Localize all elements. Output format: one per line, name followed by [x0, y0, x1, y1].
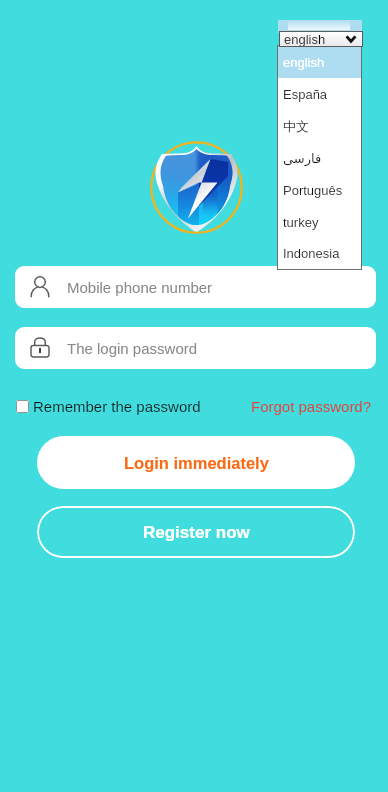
staticText: english	[284, 32, 326, 46]
button[interactable]: turkey	[278, 206, 361, 238]
button[interactable]: Indonesia	[278, 238, 361, 269]
button[interactable]: Português	[278, 174, 361, 206]
staticText: Indonesia	[283, 246, 340, 261]
button[interactable]: Register now	[37, 506, 355, 558]
staticText: Register now	[143, 523, 250, 542]
staticText: Login immediately	[124, 454, 269, 472]
button[interactable]: 中文	[278, 110, 361, 142]
button[interactable]: The login password	[15, 327, 376, 369]
button[interactable]: Login immediately	[37, 436, 355, 489]
staticText: Mobile phone number	[67, 279, 213, 296]
button[interactable]: english	[278, 46, 361, 78]
staticText: Português	[283, 183, 343, 198]
staticText: turkey	[283, 215, 319, 230]
button[interactable]: Remember the password	[16, 398, 201, 415]
staticText: english	[283, 55, 325, 70]
button[interactable]: España	[278, 78, 361, 110]
staticText: فارسی	[283, 151, 322, 166]
staticText: España	[283, 87, 328, 102]
staticText: 中文	[283, 118, 309, 134]
staticText: The login password	[67, 340, 198, 357]
button[interactable]: Choose language	[280, 32, 362, 46]
button[interactable]: فارسی	[278, 142, 361, 174]
button[interactable]: Mobile phone number	[15, 266, 376, 308]
button[interactable]: Forgot password?	[251, 398, 372, 415]
staticText: Forgot password?	[251, 398, 372, 415]
staticText: Remember the password	[33, 398, 201, 415]
